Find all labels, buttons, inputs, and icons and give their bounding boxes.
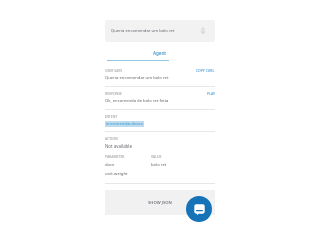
button[interactable]: PLAY — [207, 91, 215, 96]
button[interactable]: Open chat — [186, 196, 212, 222]
button[interactable]: Agent — [105, 46, 215, 60]
staticText: bolo ret — [151, 162, 167, 168]
button[interactable]: SHOW JSON — [105, 190, 215, 215]
staticText: INTENT — [105, 114, 118, 119]
button[interactable]: INTENT — [105, 114, 215, 136]
staticText: Agent — [153, 50, 167, 56]
staticText: RESPONSE — [105, 91, 123, 96]
button[interactable]: COPY CURL — [196, 68, 215, 73]
staticText: PLAY — [207, 91, 215, 96]
staticText: Queria encomendar um bolo ret — [105, 75, 169, 81]
staticText: Queria encomendar um bolo ret — [111, 28, 197, 34]
staticText: doce — [105, 162, 151, 168]
staticText: Not available — [105, 143, 132, 149]
staticText: Ok, encomenda de bolo ret feita — [105, 98, 169, 104]
button[interactable]: Voice search — [197, 25, 209, 37]
button[interactable]: RESPONSE — [105, 91, 215, 114]
button[interactable]: USER SAYS — [105, 68, 215, 91]
staticText: unit-weight — [105, 171, 128, 177]
staticText: SHOW JSON — [148, 200, 172, 206]
staticText: encomendar.doces — [106, 121, 143, 127]
staticText: COPY CURL — [196, 68, 215, 73]
button[interactable]: Queria encomendar um bolo ret — [105, 20, 215, 42]
staticText: ACTION — [105, 136, 118, 141]
staticText: PARAMETER — [105, 154, 151, 159]
staticText: USER SAYS — [105, 68, 123, 73]
staticText: VALUE — [151, 154, 162, 159]
